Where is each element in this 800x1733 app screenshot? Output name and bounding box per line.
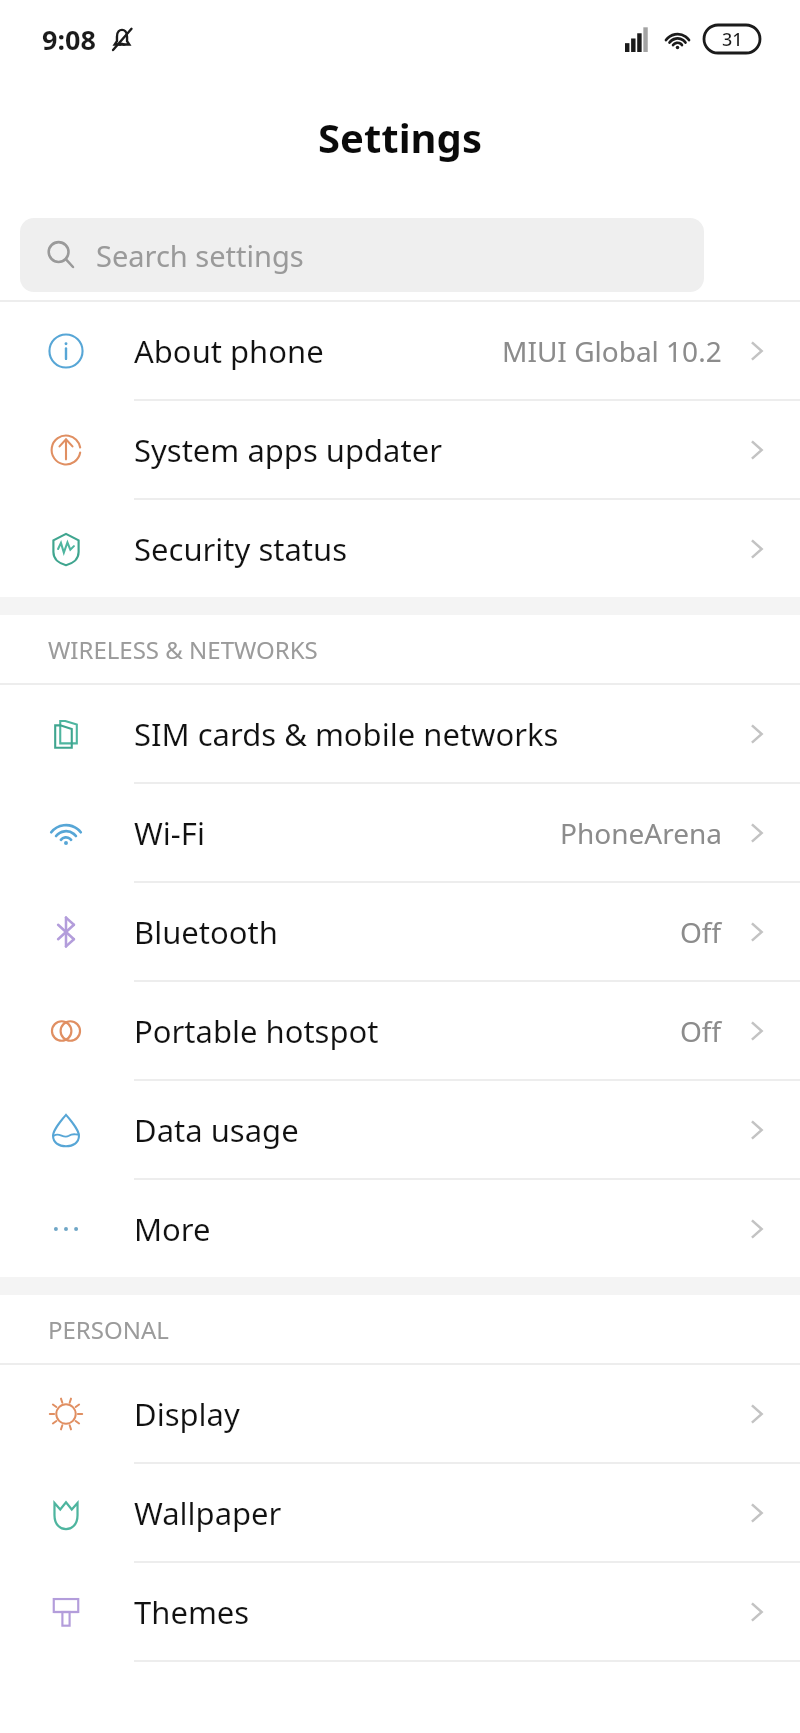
button[interactable]: Themes	[0, 1563, 800, 1660]
button[interactable]: About phone	[0, 302, 800, 399]
button[interactable]: Search settings	[20, 218, 704, 292]
staticText: 9:08	[42, 21, 96, 58]
staticText: More	[134, 1208, 211, 1250]
button[interactable]: Security status	[0, 500, 800, 597]
staticText: Wallpaper	[134, 1492, 282, 1534]
staticText: MIUI Global 10.2	[502, 332, 722, 370]
staticText: Off	[680, 1012, 722, 1050]
staticText: Data usage	[134, 1109, 299, 1151]
button[interactable]: Portable hotspot	[0, 982, 800, 1079]
staticText: Bluetooth	[134, 911, 278, 953]
staticText: SIM cards & mobile networks	[134, 713, 559, 755]
button[interactable]: System apps updater	[0, 401, 800, 498]
button[interactable]: Bluetooth	[0, 883, 800, 980]
button[interactable]: Wi-Fi	[0, 784, 800, 881]
staticText: About phone	[134, 330, 324, 372]
button[interactable]: Data usage	[0, 1081, 800, 1178]
staticText: System apps updater	[134, 429, 442, 471]
staticText: PhoneArena	[560, 814, 722, 852]
staticText: WIRELESS & NETWORKS	[48, 633, 318, 666]
staticText: 31	[722, 27, 743, 52]
staticText: Portable hotspot	[134, 1010, 379, 1052]
staticText: Settings	[318, 110, 482, 164]
button[interactable]: Display	[0, 1365, 800, 1462]
staticText: Wi-Fi	[134, 812, 205, 854]
button[interactable]: Wallpaper	[0, 1464, 800, 1561]
staticText: Themes	[134, 1591, 250, 1633]
button[interactable]: More	[0, 1180, 800, 1277]
staticText: Search settings	[96, 236, 304, 275]
staticText: Off	[680, 913, 722, 951]
staticText: Security status	[134, 528, 348, 570]
staticText: Display	[134, 1393, 240, 1435]
button[interactable]: SIM cards & mobile networks	[0, 685, 800, 782]
staticText: PERSONAL	[48, 1313, 169, 1346]
